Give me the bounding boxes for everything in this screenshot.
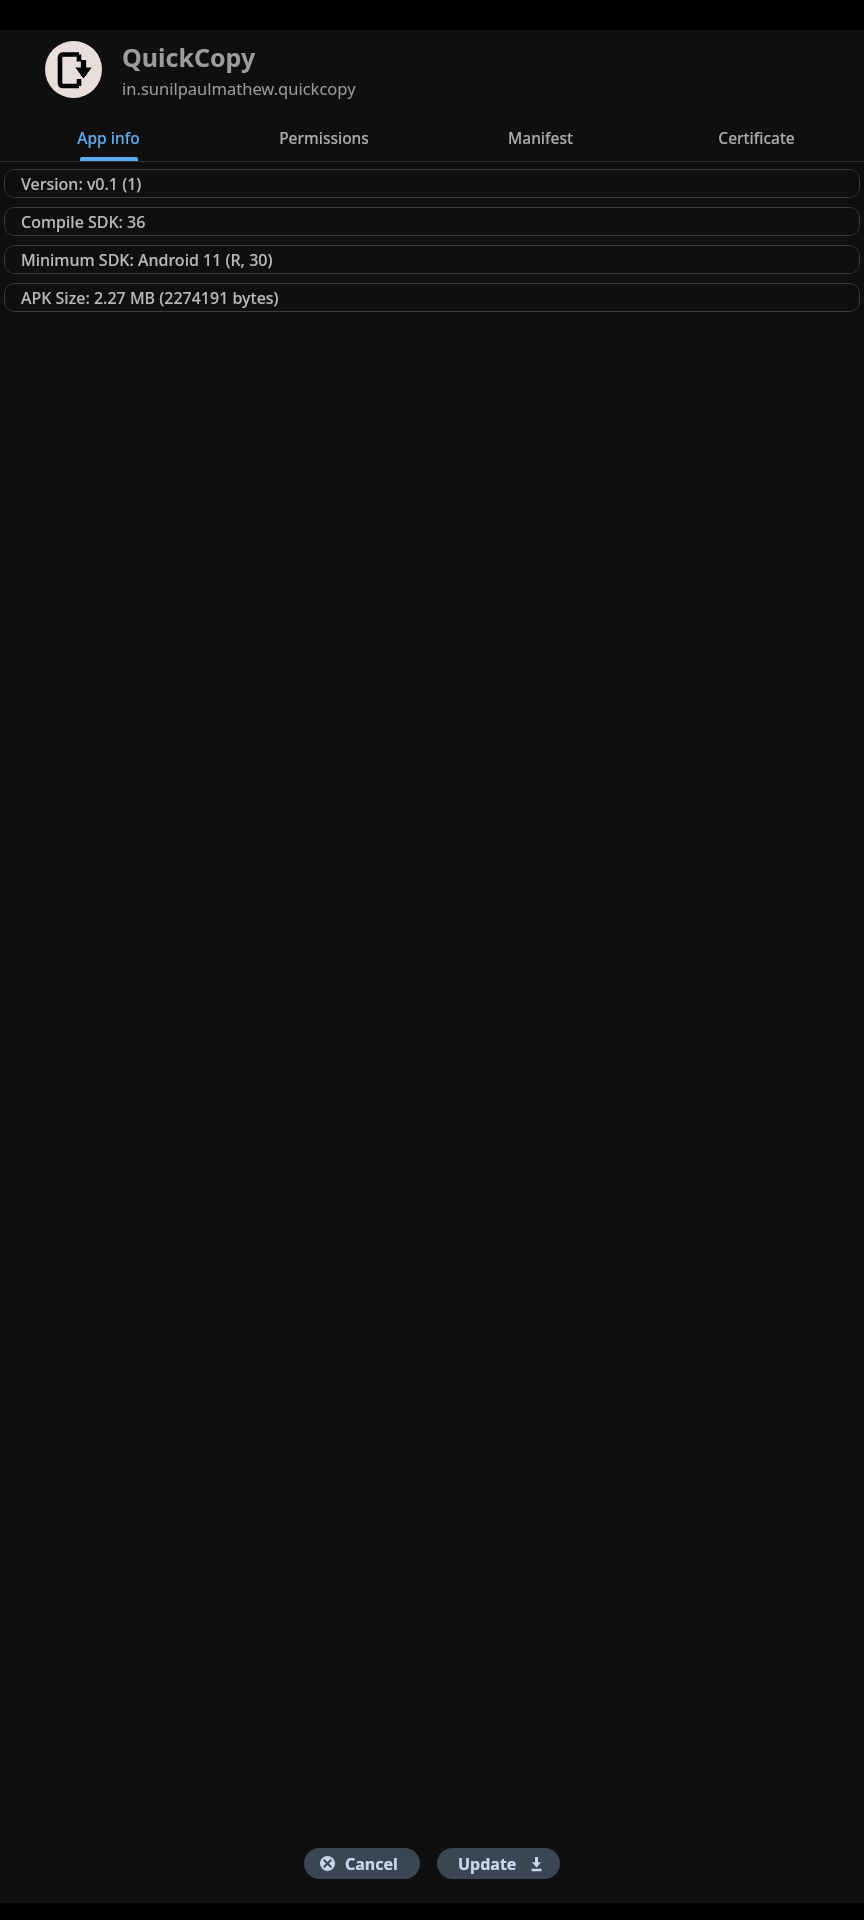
staticText: APK Size: 2.27 MB (2274191 bytes) [21, 287, 279, 309]
staticText: in.sunilpaulmathew.quickcopy [122, 77, 356, 99]
staticText: QuickCopy [122, 40, 256, 74]
staticText: Certificate [718, 127, 795, 148]
button[interactable]: Version: v0.1 (1) [4, 169, 860, 198]
button[interactable]: Permissions [216, 121, 432, 161]
other: Download update [529, 1856, 544, 1871]
staticText: Minimum SDK: Android 11 (R, 30) [21, 249, 273, 271]
button[interactable]: Minimum SDK: Android 11 (R, 30) [4, 245, 860, 274]
button[interactable]: Cancel [304, 1848, 420, 1879]
staticText: Compile SDK: 36 [21, 211, 146, 233]
staticText: Manifest [508, 127, 573, 148]
button[interactable]: Manifest [432, 121, 648, 161]
staticText: Permissions [279, 127, 369, 148]
staticText: Version: v0.1 (1) [21, 173, 142, 195]
staticText: Update [458, 1853, 517, 1875]
staticText: App info [77, 127, 140, 148]
button[interactable]: Update [437, 1848, 560, 1879]
button[interactable]: Compile SDK: 36 [4, 207, 860, 236]
button[interactable]: APK Size: 2.27 MB (2274191 bytes) [4, 283, 860, 312]
button[interactable]: App info [0, 121, 216, 161]
staticText: Cancel [345, 1853, 398, 1875]
button[interactable]: Certificate [648, 121, 864, 161]
